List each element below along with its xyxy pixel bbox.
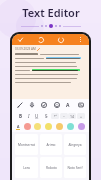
button[interactable]: Undo	[36, 35, 45, 44]
staticText: Alegreya	[68, 143, 82, 147]
button[interactable]: Roboto	[40, 157, 62, 178]
button[interactable]: Bold	[16, 112, 24, 120]
button[interactable]: Montserrat	[15, 134, 38, 155]
button[interactable]: Voice note	[27, 100, 37, 110]
staticText: Aa	[66, 102, 72, 108]
button[interactable]: Strikethrough	[42, 112, 50, 120]
button[interactable]: Emoji	[52, 100, 62, 110]
button[interactable]: Color swatch	[44, 123, 53, 130]
staticText: −	[63, 114, 66, 119]
button[interactable]: Noto Serif	[64, 157, 86, 178]
button[interactable]: Arimo	[40, 134, 62, 155]
staticText: U	[35, 113, 39, 119]
button[interactable]: Draw	[15, 100, 25, 110]
button[interactable]: Alegreya	[64, 134, 86, 155]
button[interactable]: Decrease	[60, 113, 68, 119]
button[interactable]: Color swatch	[66, 123, 75, 130]
button[interactable]: Italic	[25, 112, 33, 120]
staticText: 03.09.2023 AM	[15, 47, 36, 51]
button[interactable]: Lora	[15, 157, 38, 178]
button[interactable]: Color swatch	[33, 123, 42, 130]
staticText: Arimo	[46, 143, 56, 147]
button[interactable]: Save	[16, 35, 25, 44]
staticText: I	[28, 113, 30, 119]
button[interactable]: Color swatch	[77, 123, 86, 130]
button[interactable]: Color swatch	[55, 123, 64, 130]
staticText: Montserrat	[18, 143, 35, 147]
staticText: Text Editor	[22, 5, 80, 20]
staticText: S	[45, 113, 48, 119]
staticText: Noto Serif	[67, 166, 83, 170]
button[interactable]: Size	[68, 113, 76, 119]
button[interactable]: Text format	[64, 100, 74, 110]
button[interactable]: Line break	[51, 113, 59, 119]
staticText: A	[17, 124, 20, 129]
button[interactable]: Increase	[77, 113, 85, 119]
button[interactable]: Checklist	[39, 100, 49, 110]
staticText: Roboto	[46, 166, 57, 170]
button[interactable]: Text color	[15, 124, 21, 130]
staticText: 14	[70, 114, 75, 119]
staticText: +	[80, 114, 83, 119]
staticText: B	[19, 113, 22, 119]
button[interactable]: Insert image	[76, 100, 86, 110]
button[interactable]: Color swatch	[23, 123, 31, 130]
button[interactable]: Redo	[56, 35, 65, 44]
staticText: ↵	[54, 114, 57, 118]
button[interactable]: Underline	[33, 112, 41, 120]
button[interactable]: More options	[76, 35, 85, 44]
staticText: Lora	[23, 166, 30, 170]
